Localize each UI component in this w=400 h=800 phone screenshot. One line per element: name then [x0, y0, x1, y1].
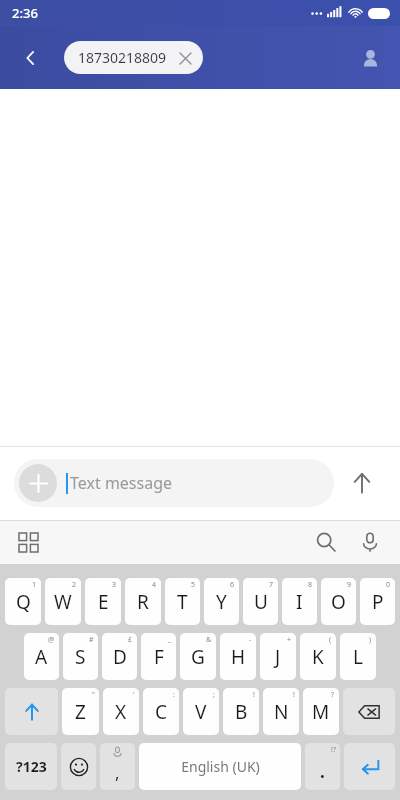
staticText: S [75, 644, 86, 670]
staticText: M [312, 699, 330, 725]
button[interactable]: V [183, 688, 219, 735]
button[interactable]: N [263, 688, 299, 735]
button[interactable]: . [305, 743, 340, 790]
staticText: # [89, 635, 94, 645]
staticText: ' [133, 690, 135, 700]
button[interactable]: B [223, 688, 259, 735]
staticText: + [287, 635, 292, 645]
button[interactable]: K [300, 633, 336, 680]
staticText: " [92, 690, 95, 700]
button[interactable]: Send [334, 446, 390, 520]
staticText: ! [253, 690, 255, 700]
staticText: E [98, 589, 109, 615]
staticText: W [54, 589, 72, 615]
button[interactable]: D [102, 633, 137, 680]
staticText: A [35, 644, 48, 670]
staticText: 4 [152, 580, 157, 590]
staticText: English (UK) [181, 757, 260, 776]
button[interactable]: I [282, 578, 317, 625]
staticText: O [331, 589, 346, 615]
staticText: 6 [230, 580, 235, 590]
button[interactable]: Backspace [343, 688, 395, 735]
staticText: _ [168, 635, 172, 645]
button[interactable]: Shift [5, 688, 58, 735]
button[interactable]: A [24, 633, 59, 680]
staticText: 9 [347, 580, 352, 590]
staticText: 1 [32, 580, 37, 590]
button[interactable]: , [100, 743, 135, 790]
staticText: 5 [191, 580, 196, 590]
staticText: ? [331, 690, 335, 700]
staticText: ! [293, 690, 295, 700]
button[interactable]: U [243, 578, 278, 625]
staticText: U [254, 589, 268, 615]
button[interactable]: Emoji [61, 743, 96, 790]
button[interactable]: Search [304, 520, 348, 564]
staticText: ?123 [16, 757, 47, 776]
staticText: Q [16, 589, 31, 615]
button[interactable]: X [103, 688, 139, 735]
button[interactable]: O [321, 578, 356, 625]
button[interactable]: W [45, 578, 81, 625]
staticText: I [296, 589, 303, 615]
staticText: - [249, 635, 252, 645]
staticText: X [115, 699, 127, 725]
staticText: ( [329, 635, 332, 645]
button[interactable]: E [85, 578, 121, 625]
button[interactable]: P [360, 578, 395, 625]
staticText: Z [75, 699, 86, 725]
button[interactable]: Add attachment [19, 464, 57, 502]
button[interactable]: 18730218809 [64, 41, 203, 74]
staticText: L [353, 644, 363, 670]
button[interactable]: Contact [352, 40, 388, 76]
staticText: T [177, 589, 188, 615]
button[interactable]: J [260, 633, 296, 680]
staticText: 3 [112, 580, 117, 590]
staticText: 2:36 [12, 4, 38, 22]
staticText: : [173, 690, 175, 700]
staticText: !? [331, 745, 336, 755]
button[interactable]: Voice input [348, 520, 392, 564]
staticText: R [137, 589, 149, 615]
button[interactable]: English (UK) [139, 743, 301, 790]
staticText: G [191, 644, 205, 670]
staticText: Text message [70, 472, 173, 494]
button[interactable]: C [143, 688, 179, 735]
button[interactable]: Back [14, 41, 48, 75]
staticText: £ [128, 635, 133, 645]
button[interactable]: ?123 [5, 743, 57, 790]
staticText: Y [216, 589, 227, 615]
staticText: 0 [386, 580, 391, 590]
staticText: 7 [269, 580, 274, 590]
staticText: P [372, 589, 384, 615]
button[interactable]: Add attachment [14, 459, 334, 507]
staticText: & [206, 635, 212, 645]
button[interactable]: Apps [8, 522, 48, 562]
staticText: B [235, 699, 248, 725]
button[interactable]: T [165, 578, 200, 625]
staticText: J [275, 644, 281, 670]
button[interactable]: Z [62, 688, 99, 735]
button[interactable]: S [63, 633, 98, 680]
staticText: V [195, 699, 207, 725]
button[interactable]: L [340, 633, 376, 680]
staticText: 8 [308, 580, 313, 590]
button[interactable]: G [180, 633, 216, 680]
staticText: H [231, 644, 246, 670]
staticText: K [312, 644, 324, 670]
button[interactable]: R [125, 578, 161, 625]
button[interactable]: H [220, 633, 256, 680]
staticText: N [274, 699, 289, 725]
button[interactable]: Enter [344, 743, 395, 790]
staticText: D [113, 644, 127, 670]
staticText: F [154, 644, 164, 670]
staticText: @ [48, 635, 55, 645]
button[interactable]: Q [5, 578, 41, 625]
staticText: ) [369, 635, 372, 645]
button[interactable]: M [303, 688, 339, 735]
button[interactable]: Y [204, 578, 239, 625]
staticText: C [155, 699, 168, 725]
button[interactable]: F [141, 633, 176, 680]
staticText: ; [213, 690, 215, 700]
staticText: 2 [72, 580, 77, 590]
